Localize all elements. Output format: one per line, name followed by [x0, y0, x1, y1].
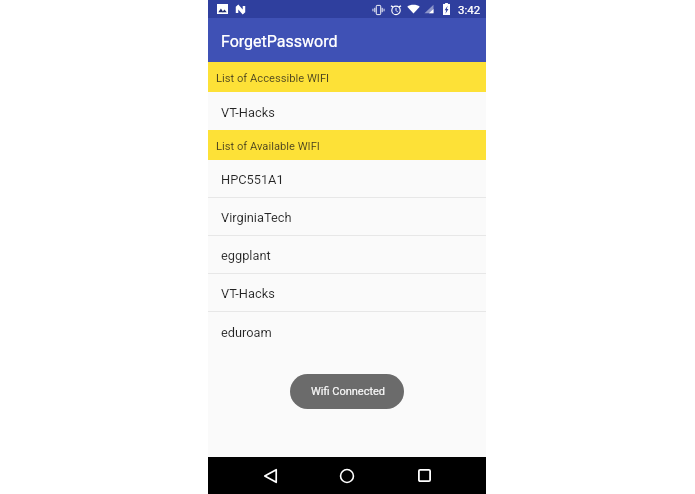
- staticText: eduroam: [221, 325, 272, 340]
- button[interactable]: VirginiaTech: [208, 198, 486, 235]
- staticText: VirginiaTech: [221, 210, 292, 225]
- staticText: VT-Hacks: [221, 105, 275, 120]
- button[interactable]: VT-Hacks: [208, 92, 486, 130]
- button[interactable]: eggplant: [208, 236, 486, 273]
- staticText: List of Available WIFI: [216, 140, 320, 153]
- staticText: HPC551A1: [221, 172, 284, 187]
- button[interactable]: Recents: [405, 457, 443, 494]
- button[interactable]: eduroam: [208, 312, 486, 350]
- staticText: eggplant: [221, 248, 271, 263]
- staticText: Wifi Connected: [311, 385, 386, 398]
- button[interactable]: Wifi Connected: [290, 374, 404, 409]
- button[interactable]: Back: [251, 457, 289, 494]
- button[interactable]: List of Available WIFI: [208, 130, 486, 160]
- button[interactable]: Home: [328, 457, 366, 494]
- staticText: ForgetPassword: [221, 32, 338, 51]
- button[interactable]: VT-Hacks: [208, 274, 486, 311]
- staticText: 3:42: [458, 3, 481, 16]
- button[interactable]: HPC551A1: [208, 160, 486, 197]
- staticText: List of Accessible WIFI: [216, 72, 330, 85]
- button[interactable]: List of Accessible WIFI: [208, 62, 486, 92]
- staticText: VT-Hacks: [221, 286, 275, 301]
